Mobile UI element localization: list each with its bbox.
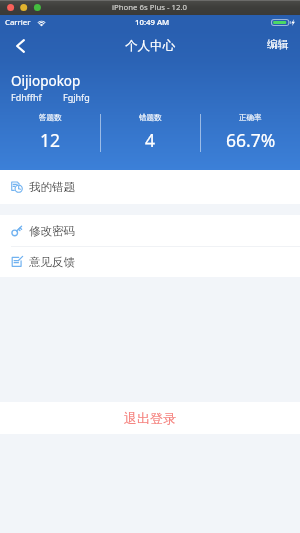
staticText: 答题数 [39, 113, 62, 122]
button[interactable]: 修改密码 [0, 215, 300, 246]
staticText: iPhone 6s Plus - 12.0 [112, 2, 188, 13]
staticText: 10:49 AM [135, 17, 170, 28]
button[interactable]: 意见反馈 [0, 247, 300, 277]
staticText: 退出登录 [124, 410, 176, 426]
button[interactable]: 我的错题 [0, 170, 300, 204]
staticText: 编辑 [267, 38, 289, 52]
staticText: 12 [40, 128, 61, 151]
staticText: Fgjhfg [63, 91, 90, 103]
button[interactable]: Back [0, 30, 38, 62]
button[interactable]: 编辑 [257, 30, 300, 62]
staticText: 意见反馈 [29, 255, 75, 269]
staticText: 正确率 [239, 113, 262, 122]
staticText: 错题数 [139, 113, 162, 122]
staticText: 修改密码 [29, 224, 75, 238]
staticText: Oijiopokop [11, 72, 81, 90]
staticText: Fdhffhf [11, 91, 42, 103]
staticText: Carrier [5, 17, 31, 28]
staticText: 66.7% [226, 128, 276, 151]
button[interactable]: 退出登录 [0, 402, 300, 434]
staticText: 个人中心 [125, 38, 175, 54]
staticText: 4 [145, 128, 156, 151]
staticText: 我的错题 [29, 180, 75, 194]
